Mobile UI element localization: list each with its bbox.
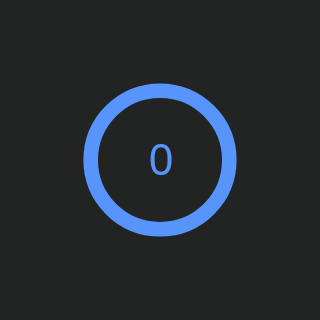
button[interactable]: Step count, 0 steps bbox=[80, 80, 240, 240]
staticText: 0 bbox=[148, 128, 174, 188]
